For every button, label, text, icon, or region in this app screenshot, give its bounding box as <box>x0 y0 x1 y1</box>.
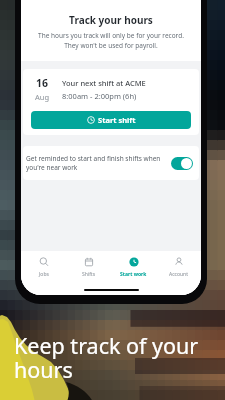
staticText: 16 <box>36 76 49 90</box>
staticText: Track your hours <box>29 13 193 27</box>
button[interactable]: Start shift <box>31 111 191 129</box>
staticText: Jobs <box>39 271 49 278</box>
button[interactable]: Account <box>156 257 201 278</box>
staticText: Account <box>169 271 189 278</box>
button[interactable]: Get reminded to start and finish shifts … <box>23 146 199 180</box>
button[interactable]: Shifts <box>66 257 111 278</box>
staticText: Aug <box>35 92 50 102</box>
staticText: Your next shift at ACME <box>62 78 146 88</box>
staticText: 8:00am - 2:00pm (6h) <box>62 91 137 101</box>
staticText: Start shift <box>98 115 136 125</box>
staticText: The hours you track will only be for you… <box>29 31 193 50</box>
button[interactable]: Jobs <box>21 257 66 278</box>
staticText: Start work <box>120 271 147 278</box>
staticText: Get reminded to start and finish shifts … <box>26 154 166 172</box>
button[interactable]: 16 <box>23 69 199 135</box>
button[interactable]: Reminder toggle <box>171 157 193 170</box>
button[interactable]: Start work <box>111 257 156 278</box>
staticText: Shifts <box>82 271 96 278</box>
staticText: Keep track of your hours <box>14 331 199 384</box>
